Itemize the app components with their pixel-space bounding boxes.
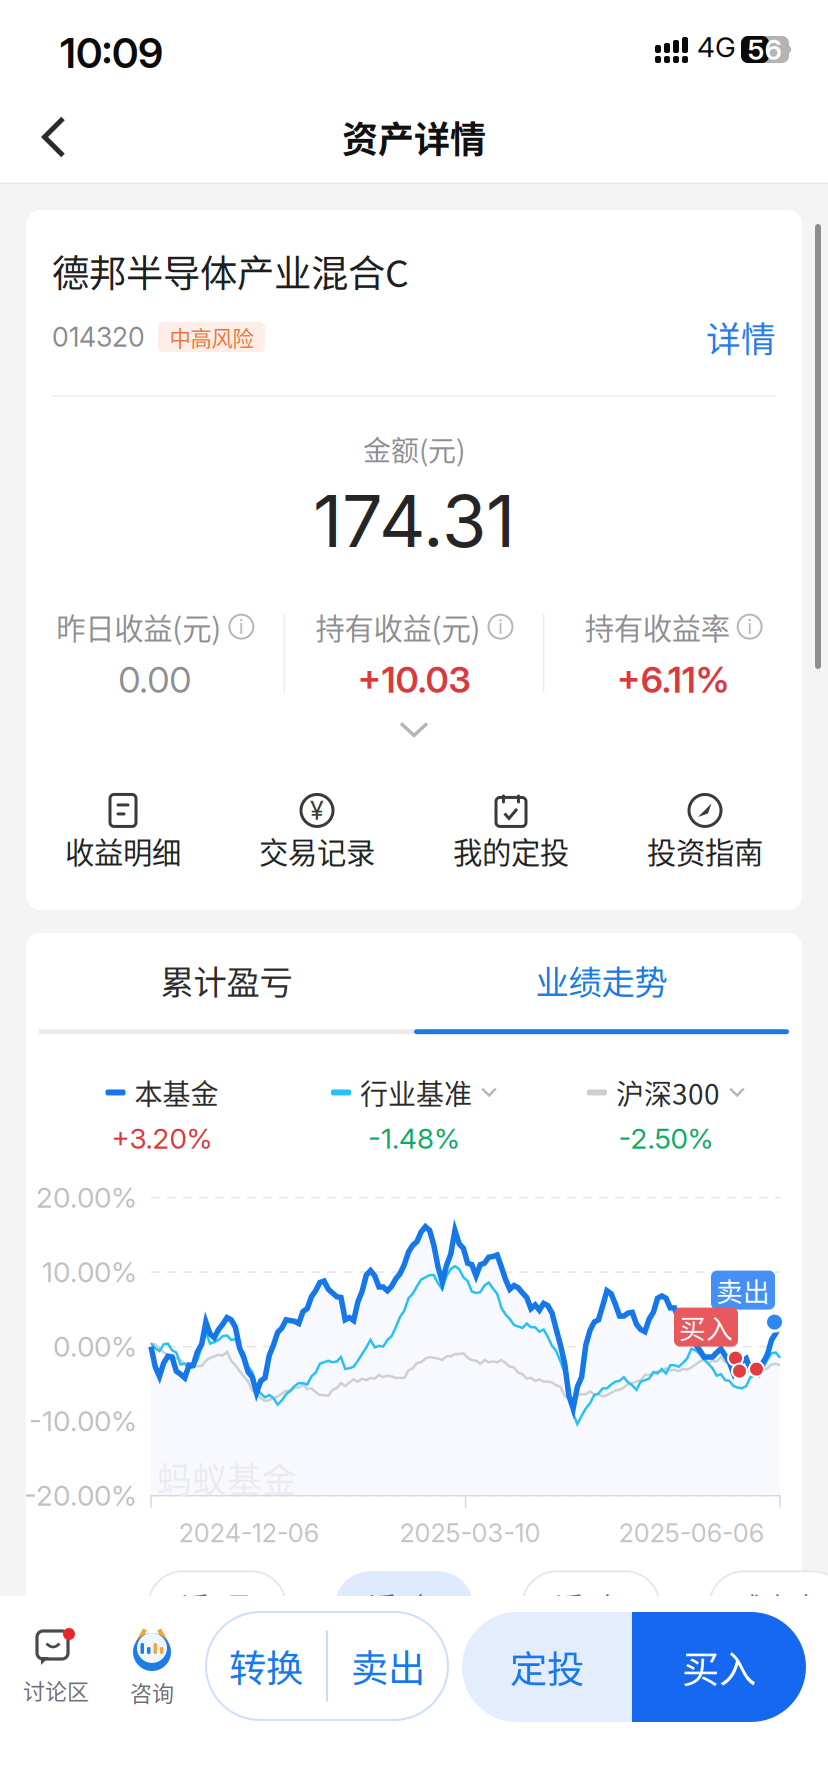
staticText: 业绩走势 (535, 956, 667, 1004)
staticText: 中高风险 (169, 322, 253, 353)
staticText: 0.00 (118, 658, 191, 701)
button[interactable]: 返回 (0, 90, 98, 184)
staticText: 我的定投 (453, 829, 569, 872)
staticText: 行业基准 (360, 1072, 472, 1113)
staticText: 2024-12-06 (179, 1518, 319, 1548)
staticText: 买入 (682, 1640, 756, 1694)
staticText: ¥ (310, 795, 324, 826)
button[interactable]: 买入 (632, 1612, 806, 1722)
staticText: 投资指南 (647, 829, 763, 872)
button[interactable]: 讨论区 (18, 1631, 94, 1723)
staticText: 累计盈亏 (160, 956, 292, 1004)
staticText: 近1月 (181, 1586, 253, 1626)
button[interactable]: 定投 (462, 1612, 632, 1722)
button[interactable]: 业绩走势 (414, 956, 789, 1034)
staticText: 014320 (52, 321, 145, 353)
staticText: 详情 (706, 312, 776, 362)
staticText: i (498, 615, 503, 639)
staticText: 4G (697, 30, 736, 64)
staticText: 2025-03-10 (399, 1518, 540, 1548)
staticText: -1.48% (368, 1122, 460, 1156)
staticText: -10.00% (29, 1404, 137, 1438)
staticText: +6.11% (617, 658, 730, 701)
staticText: 近1年 (368, 1586, 440, 1626)
staticText: i (239, 615, 244, 639)
staticText: 持有收益(元) (315, 605, 480, 648)
staticText: 174.31 (313, 477, 515, 564)
button[interactable]: 累计盈亏 (39, 956, 414, 1034)
staticText: 2025-06-06 (619, 1518, 764, 1548)
staticText: 金额(元) (363, 429, 465, 469)
staticText: +3.20% (111, 1122, 212, 1156)
staticText: 卖出 (351, 1639, 425, 1693)
staticText: -2.50% (618, 1122, 713, 1156)
staticText: 成立来 (736, 1586, 820, 1626)
button[interactable]: 成立来 (709, 1571, 828, 1641)
staticText: 56 (747, 33, 782, 66)
staticText: 交易记录 (259, 829, 375, 872)
button[interactable]: 详情 (706, 312, 776, 362)
button[interactable]: 转换 (206, 1612, 326, 1720)
staticText: 买入 (679, 1308, 733, 1346)
staticText: 转换 (229, 1639, 303, 1693)
staticText: 10.00% (42, 1255, 137, 1289)
staticText: 本基金 (134, 1072, 218, 1113)
staticText: 讨论区 (23, 1674, 89, 1706)
button[interactable]: 近3年 (522, 1571, 660, 1641)
staticText: 蚂蚁基金 (157, 1453, 297, 1503)
staticText: 昨日收益(元) (56, 605, 221, 648)
button[interactable]: 咨询 (114, 1628, 190, 1720)
staticText: -20.00% (24, 1479, 137, 1513)
button[interactable]: 卖出 (328, 1612, 448, 1720)
staticText: +10.03 (357, 658, 470, 701)
staticText: 资产详情 (342, 111, 486, 163)
button[interactable]: ¥ (220, 794, 414, 872)
button[interactable]: 收益明细 (26, 794, 220, 872)
staticText: 卖出 (716, 1271, 770, 1309)
staticText: 收益明细 (65, 829, 181, 872)
staticText: i (747, 615, 752, 639)
staticText: 近3年 (555, 1586, 627, 1626)
staticText: 咨询 (130, 1676, 174, 1708)
button[interactable]: 我的定投 (414, 794, 608, 872)
staticText: 沪深300 (616, 1072, 720, 1113)
button[interactable]: 展开更多 (26, 701, 802, 757)
staticText: 10:09 (60, 28, 163, 78)
staticText: 持有收益率 (585, 605, 730, 648)
button[interactable]: 近1月 (148, 1571, 286, 1641)
button[interactable]: 投资指南 (608, 794, 802, 872)
button[interactable]: 近1年 (335, 1571, 473, 1641)
staticText: 0.00% (53, 1330, 137, 1364)
staticText: 定投 (510, 1640, 584, 1694)
staticText: 20.00% (36, 1181, 137, 1215)
staticText: 德邦半导体产业混合C (52, 244, 409, 298)
